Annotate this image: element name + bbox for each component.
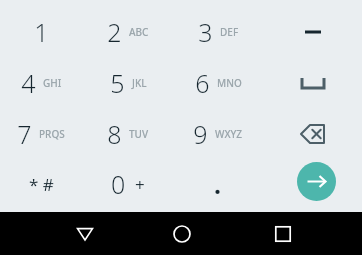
- staticText: JKL: [132, 76, 147, 90]
- button[interactable]: Backspace: [283, 109, 343, 159]
- button[interactable]: Space: [283, 58, 343, 108]
- staticText: GHI: [43, 76, 62, 90]
- button[interactable]: 1: [0, 8, 84, 56]
- button[interactable]: * #: [1, 159, 81, 209]
- staticText: 4: [21, 66, 36, 100]
- button[interactable]: Dash: [283, 8, 343, 56]
- button[interactable]: Home: [157, 212, 207, 255]
- staticText: * #: [29, 173, 54, 196]
- button[interactable]: Enter: [297, 162, 336, 201]
- staticText: MNO: [217, 76, 242, 90]
- button[interactable]: Recent apps: [258, 212, 308, 255]
- button[interactable]: 6: [175, 58, 261, 108]
- staticText: .: [214, 167, 222, 201]
- button[interactable]: 8: [85, 109, 171, 159]
- staticText: +: [135, 173, 145, 196]
- button[interactable]: 2: [85, 8, 171, 56]
- staticText: 2: [107, 15, 122, 49]
- staticText: 1: [34, 15, 49, 49]
- staticText: 7: [17, 117, 32, 151]
- button[interactable]: .: [196, 159, 240, 209]
- staticText: 9: [193, 117, 208, 151]
- button[interactable]: 5: [85, 58, 171, 108]
- button[interactable]: Back: [60, 212, 110, 255]
- button[interactable]: 9: [175, 109, 261, 159]
- staticText: PRQS: [39, 127, 65, 141]
- staticText: 8: [107, 117, 122, 151]
- staticText: ABC: [129, 25, 149, 39]
- staticText: 0: [111, 167, 126, 201]
- button[interactable]: 0: [98, 159, 158, 209]
- button[interactable]: 7: [0, 109, 84, 159]
- staticText: 3: [198, 15, 213, 49]
- staticText: 6: [195, 66, 210, 100]
- staticText: DEF: [220, 25, 239, 39]
- staticText: TUV: [129, 127, 149, 141]
- staticText: WXYZ: [215, 127, 243, 141]
- button[interactable]: 3: [175, 8, 261, 56]
- staticText: 5: [110, 66, 125, 100]
- button[interactable]: 4: [0, 58, 84, 108]
